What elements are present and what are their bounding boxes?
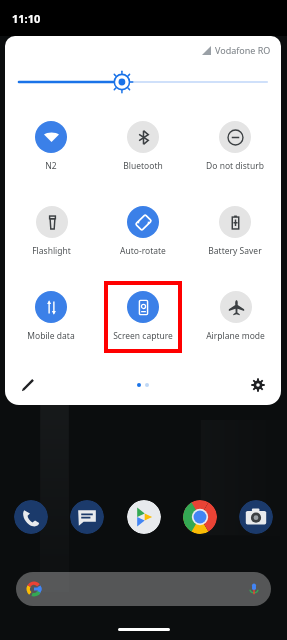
button[interactable]: Messages	[70, 500, 104, 534]
button[interactable]: Battery Saver	[208, 206, 262, 257]
staticText: 11:10	[12, 11, 41, 26]
staticText: Vodafone RO	[215, 44, 271, 56]
button[interactable]: Do not disturb	[206, 121, 264, 172]
button[interactable]: Edit tiles	[15, 372, 41, 398]
button[interactable]: Chrome	[183, 500, 217, 534]
button[interactable]: Auto-rotate	[120, 206, 166, 257]
button[interactable]: Settings	[245, 372, 271, 398]
staticText: Flashlight	[32, 245, 71, 257]
button[interactable]: Phone	[14, 500, 48, 534]
button[interactable]: Play Store	[127, 500, 161, 534]
button[interactable]: Screen capture	[108, 285, 178, 349]
staticText: Auto-rotate	[120, 245, 166, 257]
staticText: Do not disturb	[206, 160, 264, 172]
staticText: Screen capture	[113, 330, 173, 342]
staticText: Airplane mode	[206, 330, 265, 342]
staticText: Battery Saver	[208, 245, 262, 257]
button[interactable]: Mobile data	[27, 291, 75, 342]
staticText: Bluetooth	[123, 160, 163, 172]
button[interactable]: Bluetooth	[123, 121, 163, 172]
staticText: Mobile data	[27, 330, 75, 342]
button[interactable]: Camera	[239, 500, 273, 534]
staticText: N2	[45, 160, 57, 172]
button[interactable]	[16, 572, 271, 606]
button[interactable]: Flashlight	[32, 206, 71, 257]
button[interactable]: Airplane mode	[206, 291, 265, 342]
button[interactable]	[19, 64, 267, 100]
button[interactable]: N2	[35, 121, 67, 172]
